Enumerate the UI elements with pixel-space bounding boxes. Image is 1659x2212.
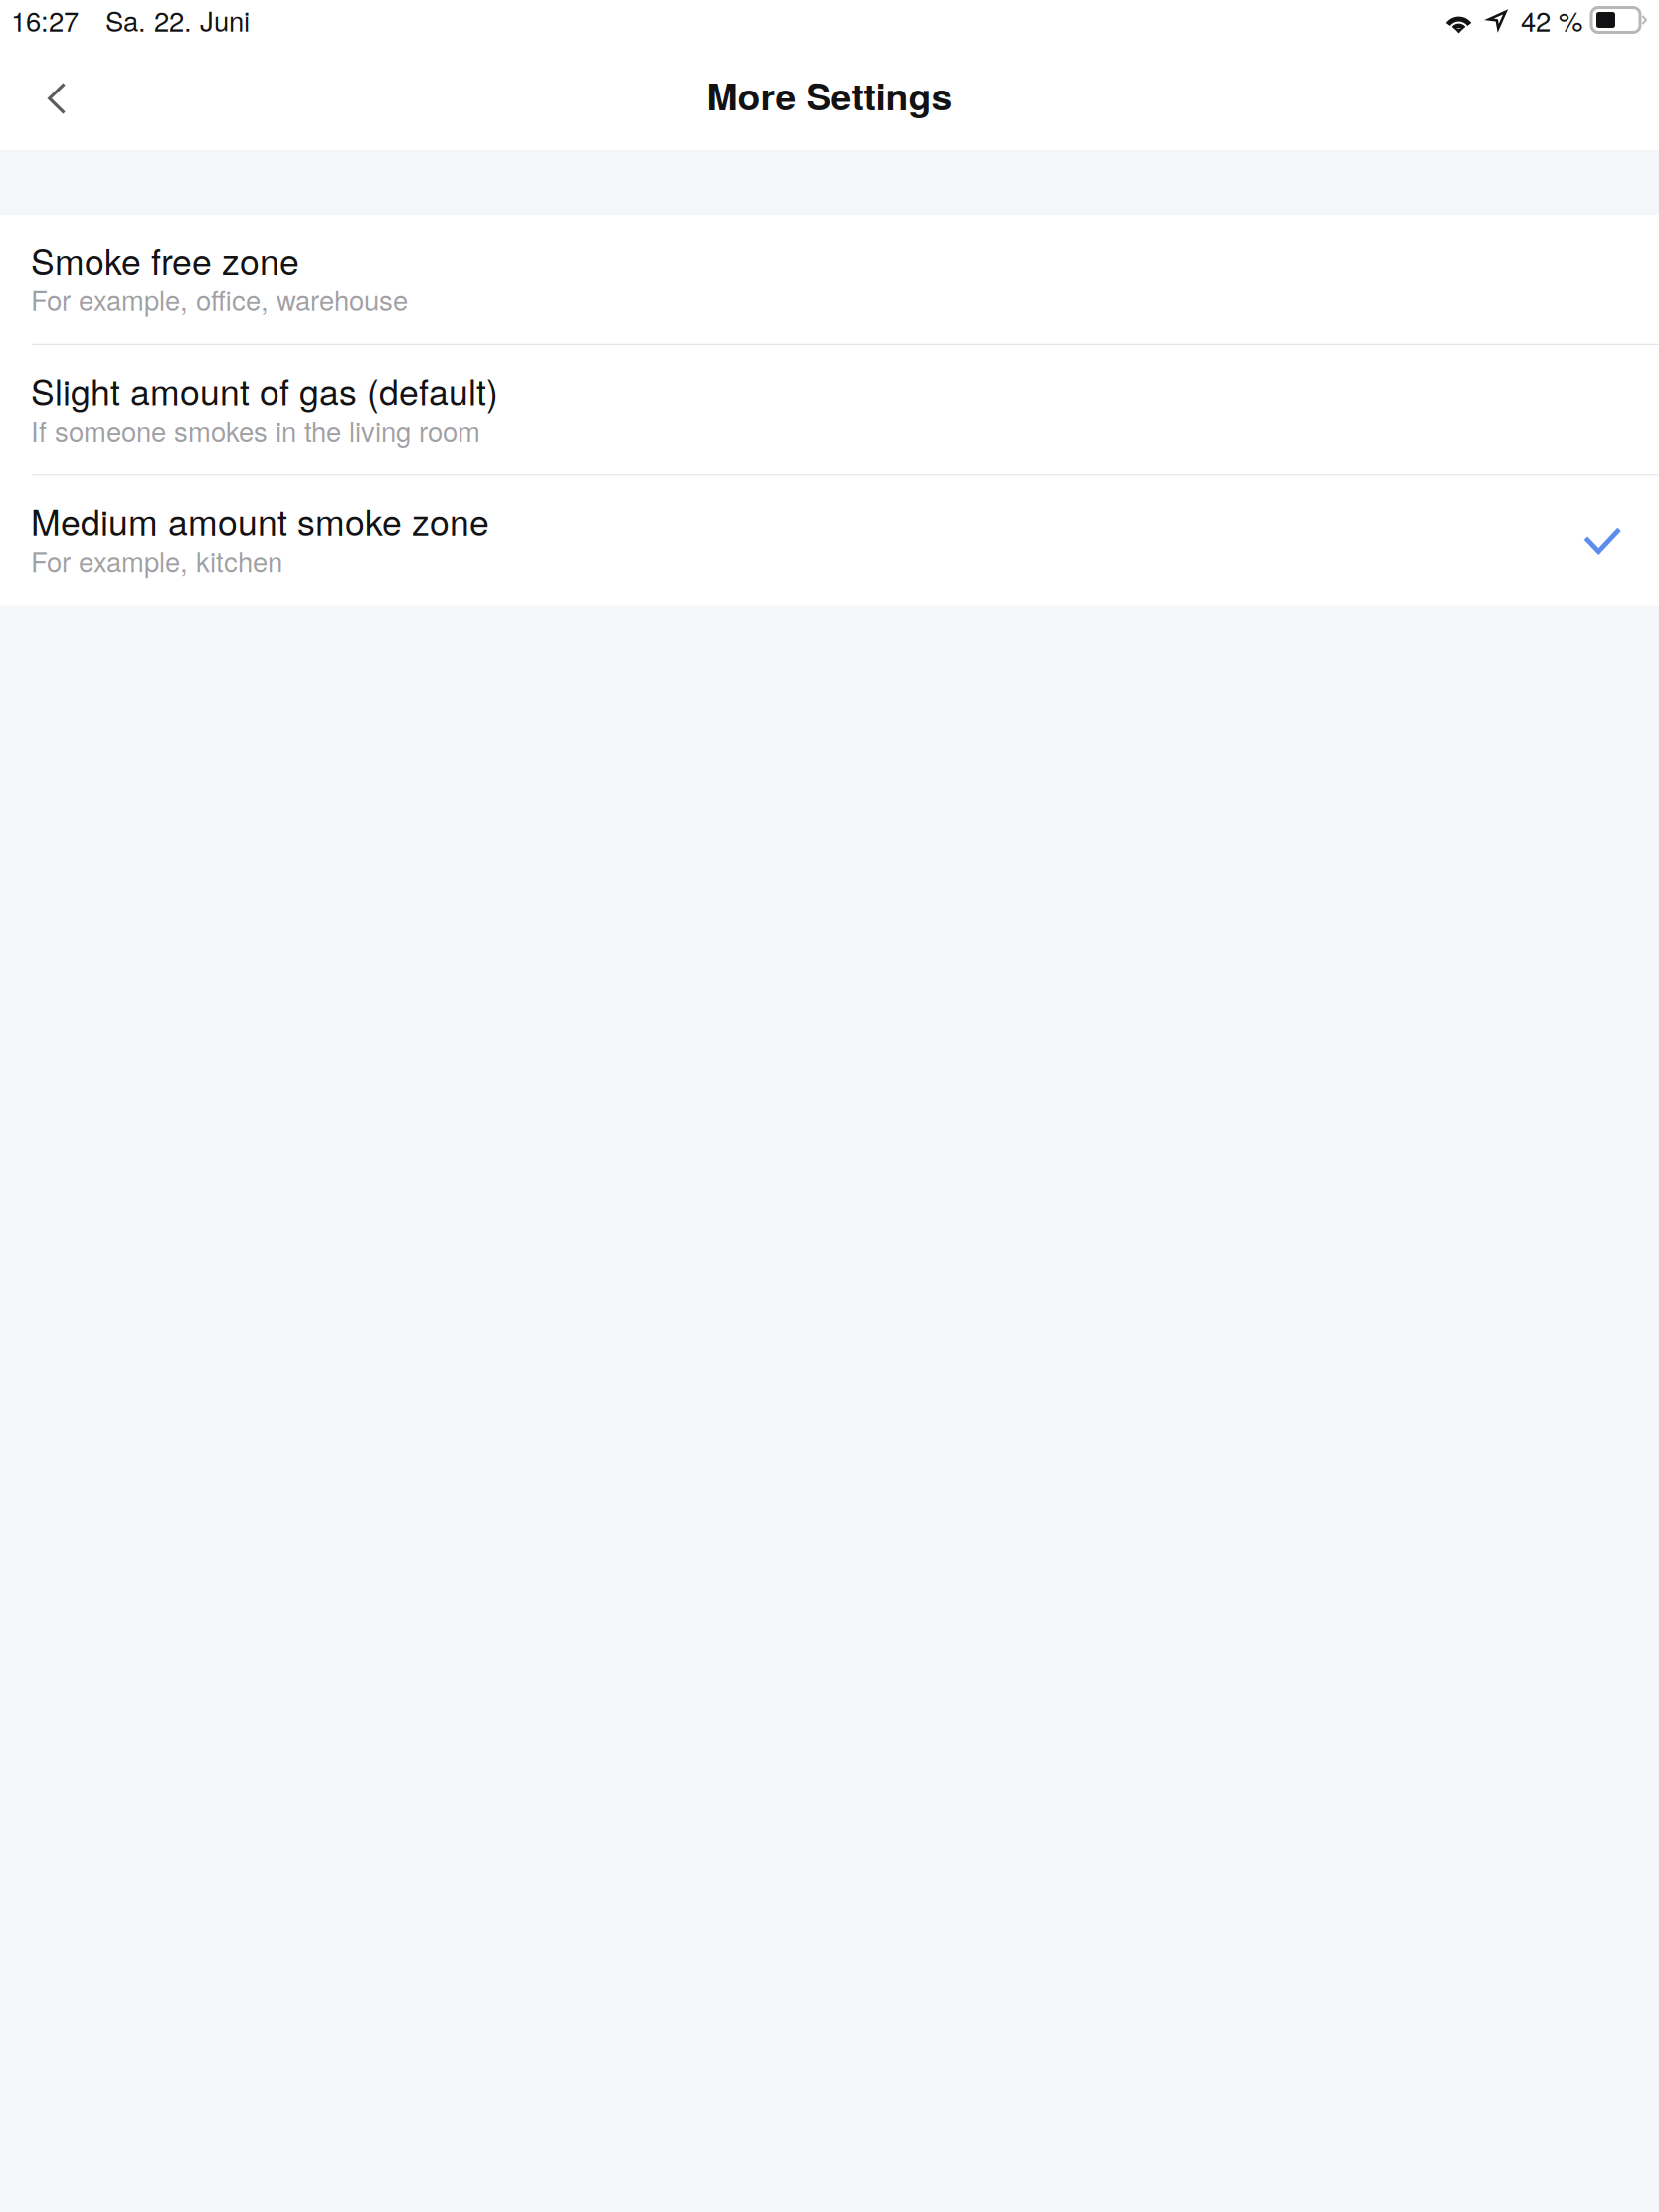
button[interactable]: Smoke free zone	[0, 215, 1659, 344]
staticText: If someone smokes in the living room	[31, 410, 480, 449]
button[interactable]: Slight amount of gas (default)	[0, 345, 1659, 475]
button[interactable]: Medium amount smoke zone	[0, 476, 1659, 605]
staticText: More Settings	[707, 69, 952, 122]
staticText: For example, kitchen	[31, 541, 282, 580]
button[interactable]: Back	[0, 52, 99, 150]
staticText: Sa. 22. Juni	[105, 0, 250, 39]
staticText: For example, office, warehouse	[31, 280, 408, 319]
staticText: 42 %	[1521, 0, 1582, 39]
staticText: Smoke free zone	[31, 234, 299, 285]
staticText: Slight amount of gas (default)	[31, 365, 498, 415]
staticText: 16:27	[11, 0, 79, 39]
staticText: Medium amount smoke zone	[31, 495, 489, 546]
